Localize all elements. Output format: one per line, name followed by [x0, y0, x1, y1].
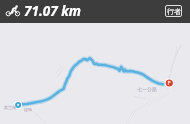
- staticText: 七一公路: [137, 86, 157, 92]
- other: Cycling activity: [6, 5, 19, 18]
- staticText: 美兰湖: [4, 105, 16, 110]
- button[interactable]: 行者: [165, 5, 182, 17]
- staticText: 行者: [167, 7, 181, 16]
- button[interactable]: Start point: [14, 101, 23, 110]
- staticText: 71.07 km: [24, 2, 82, 20]
- button[interactable]: Finish point: [165, 79, 174, 88]
- staticText: 绿地: [24, 107, 32, 112]
